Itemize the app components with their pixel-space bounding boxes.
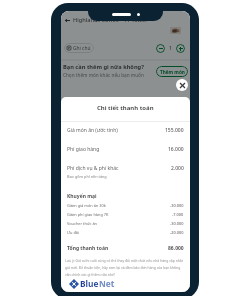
staticText: 86.000 xyxy=(168,245,184,252)
button[interactable]: Thêm món xyxy=(156,66,188,77)
staticText: Giảm giá món ăn 30k xyxy=(67,203,106,208)
staticText: Khuyến mại xyxy=(67,193,97,200)
button[interactable]: Giảm số lượng xyxy=(156,44,165,53)
staticText: -30.000 xyxy=(170,221,184,226)
staticText: Giá món ăn (ước tính) xyxy=(67,127,118,134)
staticText: Bao gồm phí nền tảng xyxy=(67,174,107,179)
staticText: Chi tiết thanh toán xyxy=(97,104,154,112)
staticText: Lưu ý: Giá cước cuối cùng có thể thay đổ… xyxy=(65,258,185,277)
staticText: -7.000 xyxy=(172,212,184,217)
staticText: 1 xyxy=(169,45,172,52)
staticText: -20.000 xyxy=(170,230,184,235)
staticText: Bạn cần thêm gì nữa không? xyxy=(63,63,144,71)
staticText: 2.000 xyxy=(171,165,184,172)
staticText: 155.000 xyxy=(165,127,184,134)
staticText: Highlands Coffee - 41 Tower xyxy=(73,16,148,24)
staticText: Net xyxy=(99,278,115,289)
staticText: Chọn thêm món khác nếu bạn muốn xyxy=(63,72,144,78)
staticText: Thêm món xyxy=(160,69,185,75)
button[interactable]: Tăng số lượng xyxy=(176,44,185,53)
staticText: 16.000 xyxy=(168,146,184,153)
staticText: -30.000 xyxy=(170,203,184,208)
button[interactable]: Ghi chú xyxy=(64,43,94,53)
staticText: Giảm phí giao hàng 7K xyxy=(67,212,109,217)
staticText: Blue xyxy=(80,278,99,289)
staticText: Voucher thức ăn xyxy=(67,221,97,226)
staticText: Phí giao hàng xyxy=(67,146,100,153)
button[interactable]: Quay lại xyxy=(63,16,71,24)
staticText: Ghi chú xyxy=(73,45,91,52)
staticText: Tổng thanh toán xyxy=(67,245,109,252)
staticText: Phí dịch vụ & phí khác xyxy=(67,165,119,172)
button[interactable]: Đóng xyxy=(176,79,188,91)
staticText: Ưu đãi xyxy=(67,230,80,235)
